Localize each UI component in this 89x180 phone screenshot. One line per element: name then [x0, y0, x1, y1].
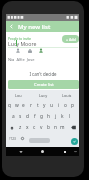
staticText: u — [50, 102, 53, 109]
staticText: Louis — [62, 93, 72, 98]
staticText: My new list — [18, 23, 51, 31]
button[interactable]: u — [48, 100, 55, 111]
button[interactable]: j — [52, 111, 59, 122]
staticText: f — [34, 113, 36, 120]
staticText: People to invite — [8, 37, 32, 41]
staticText: c — [33, 124, 36, 131]
staticText: Nia Alfie Jose — [8, 57, 35, 62]
button[interactable]: f — [31, 111, 38, 122]
staticText: k — [61, 113, 64, 120]
staticText: I can't decide — [29, 71, 57, 77]
button[interactable]: Louis — [55, 90, 79, 100]
staticText: m — [60, 124, 65, 131]
button[interactable]: d — [24, 111, 31, 122]
staticText: g — [40, 113, 43, 120]
button[interactable]: t — [34, 100, 41, 111]
button[interactable]: q — [6, 100, 13, 111]
staticText: y — [43, 102, 46, 109]
button[interactable]: w — [13, 100, 20, 111]
button[interactable]: Home — [39, 148, 46, 155]
button[interactable]: h — [45, 111, 52, 122]
button[interactable]: Navigate back — [6, 21, 17, 32]
button[interactable]: a — [10, 111, 17, 122]
staticText: Lucy Moore — [8, 40, 37, 47]
staticText: z — [19, 124, 22, 131]
staticText: Lucy — [39, 93, 48, 98]
button[interactable]: Create list — [8, 80, 79, 89]
staticText: + Add — [66, 37, 76, 42]
button[interactable]: e — [20, 100, 27, 111]
button[interactable]: x — [24, 122, 31, 133]
staticText: p — [71, 102, 74, 109]
staticText: s — [19, 113, 22, 120]
button[interactable]: + Add — [62, 35, 79, 43]
staticText: r — [30, 102, 32, 109]
staticText: w — [15, 102, 19, 109]
staticText: d — [26, 113, 29, 120]
button[interactable]: Alfie — [26, 47, 34, 55]
staticText: i — [58, 102, 60, 109]
button[interactable]: o — [62, 100, 69, 111]
button[interactable]: r — [27, 100, 34, 111]
button[interactable]: k — [59, 111, 66, 122]
button[interactable]: p — [69, 100, 76, 111]
staticText: Create list — [34, 82, 54, 88]
staticText: a — [12, 113, 15, 120]
button[interactable]: Enter — [71, 138, 78, 145]
button[interactable]: Lou — [6, 90, 31, 100]
button[interactable]: m — [59, 122, 66, 133]
button[interactable]: Lucy — [31, 90, 55, 100]
staticText: h — [47, 113, 50, 120]
button[interactable]: b — [45, 122, 52, 133]
button[interactable]: s — [17, 111, 24, 122]
button[interactable]: y — [41, 100, 48, 111]
button[interactable]: Shift — [6, 122, 17, 133]
staticText: n — [54, 124, 57, 131]
staticText: ?123 — [9, 137, 16, 141]
staticText: o — [64, 102, 67, 109]
staticText: x — [26, 124, 29, 131]
button[interactable]: Space — [29, 138, 50, 143]
staticText: Lou — [15, 93, 22, 98]
button[interactable]: c — [31, 122, 38, 133]
button[interactable]: Recent apps — [61, 148, 68, 155]
staticText: t — [37, 102, 39, 109]
button[interactable]: Jose — [37, 47, 45, 55]
staticText: j — [55, 113, 57, 120]
button[interactable]: Backspace — [68, 122, 79, 133]
staticText: b — [47, 124, 50, 131]
button[interactable]: z — [17, 122, 24, 133]
button[interactable]: Emoji — [17, 133, 27, 144]
button[interactable]: v — [38, 122, 45, 133]
button[interactable]: g — [38, 111, 45, 122]
staticText: q — [8, 102, 11, 109]
staticText: e — [22, 102, 25, 109]
button[interactable]: ?123 — [7, 133, 17, 144]
button[interactable]: i — [55, 100, 62, 111]
button[interactable]: l — [66, 111, 73, 122]
button[interactable]: Nia — [14, 47, 22, 55]
button[interactable]: n — [52, 122, 59, 133]
staticText: l — [69, 113, 71, 120]
button[interactable]: Hide keyboard — [17, 148, 24, 155]
button[interactable]: Switch keyboard — [72, 148, 79, 155]
staticText: v — [40, 124, 43, 131]
